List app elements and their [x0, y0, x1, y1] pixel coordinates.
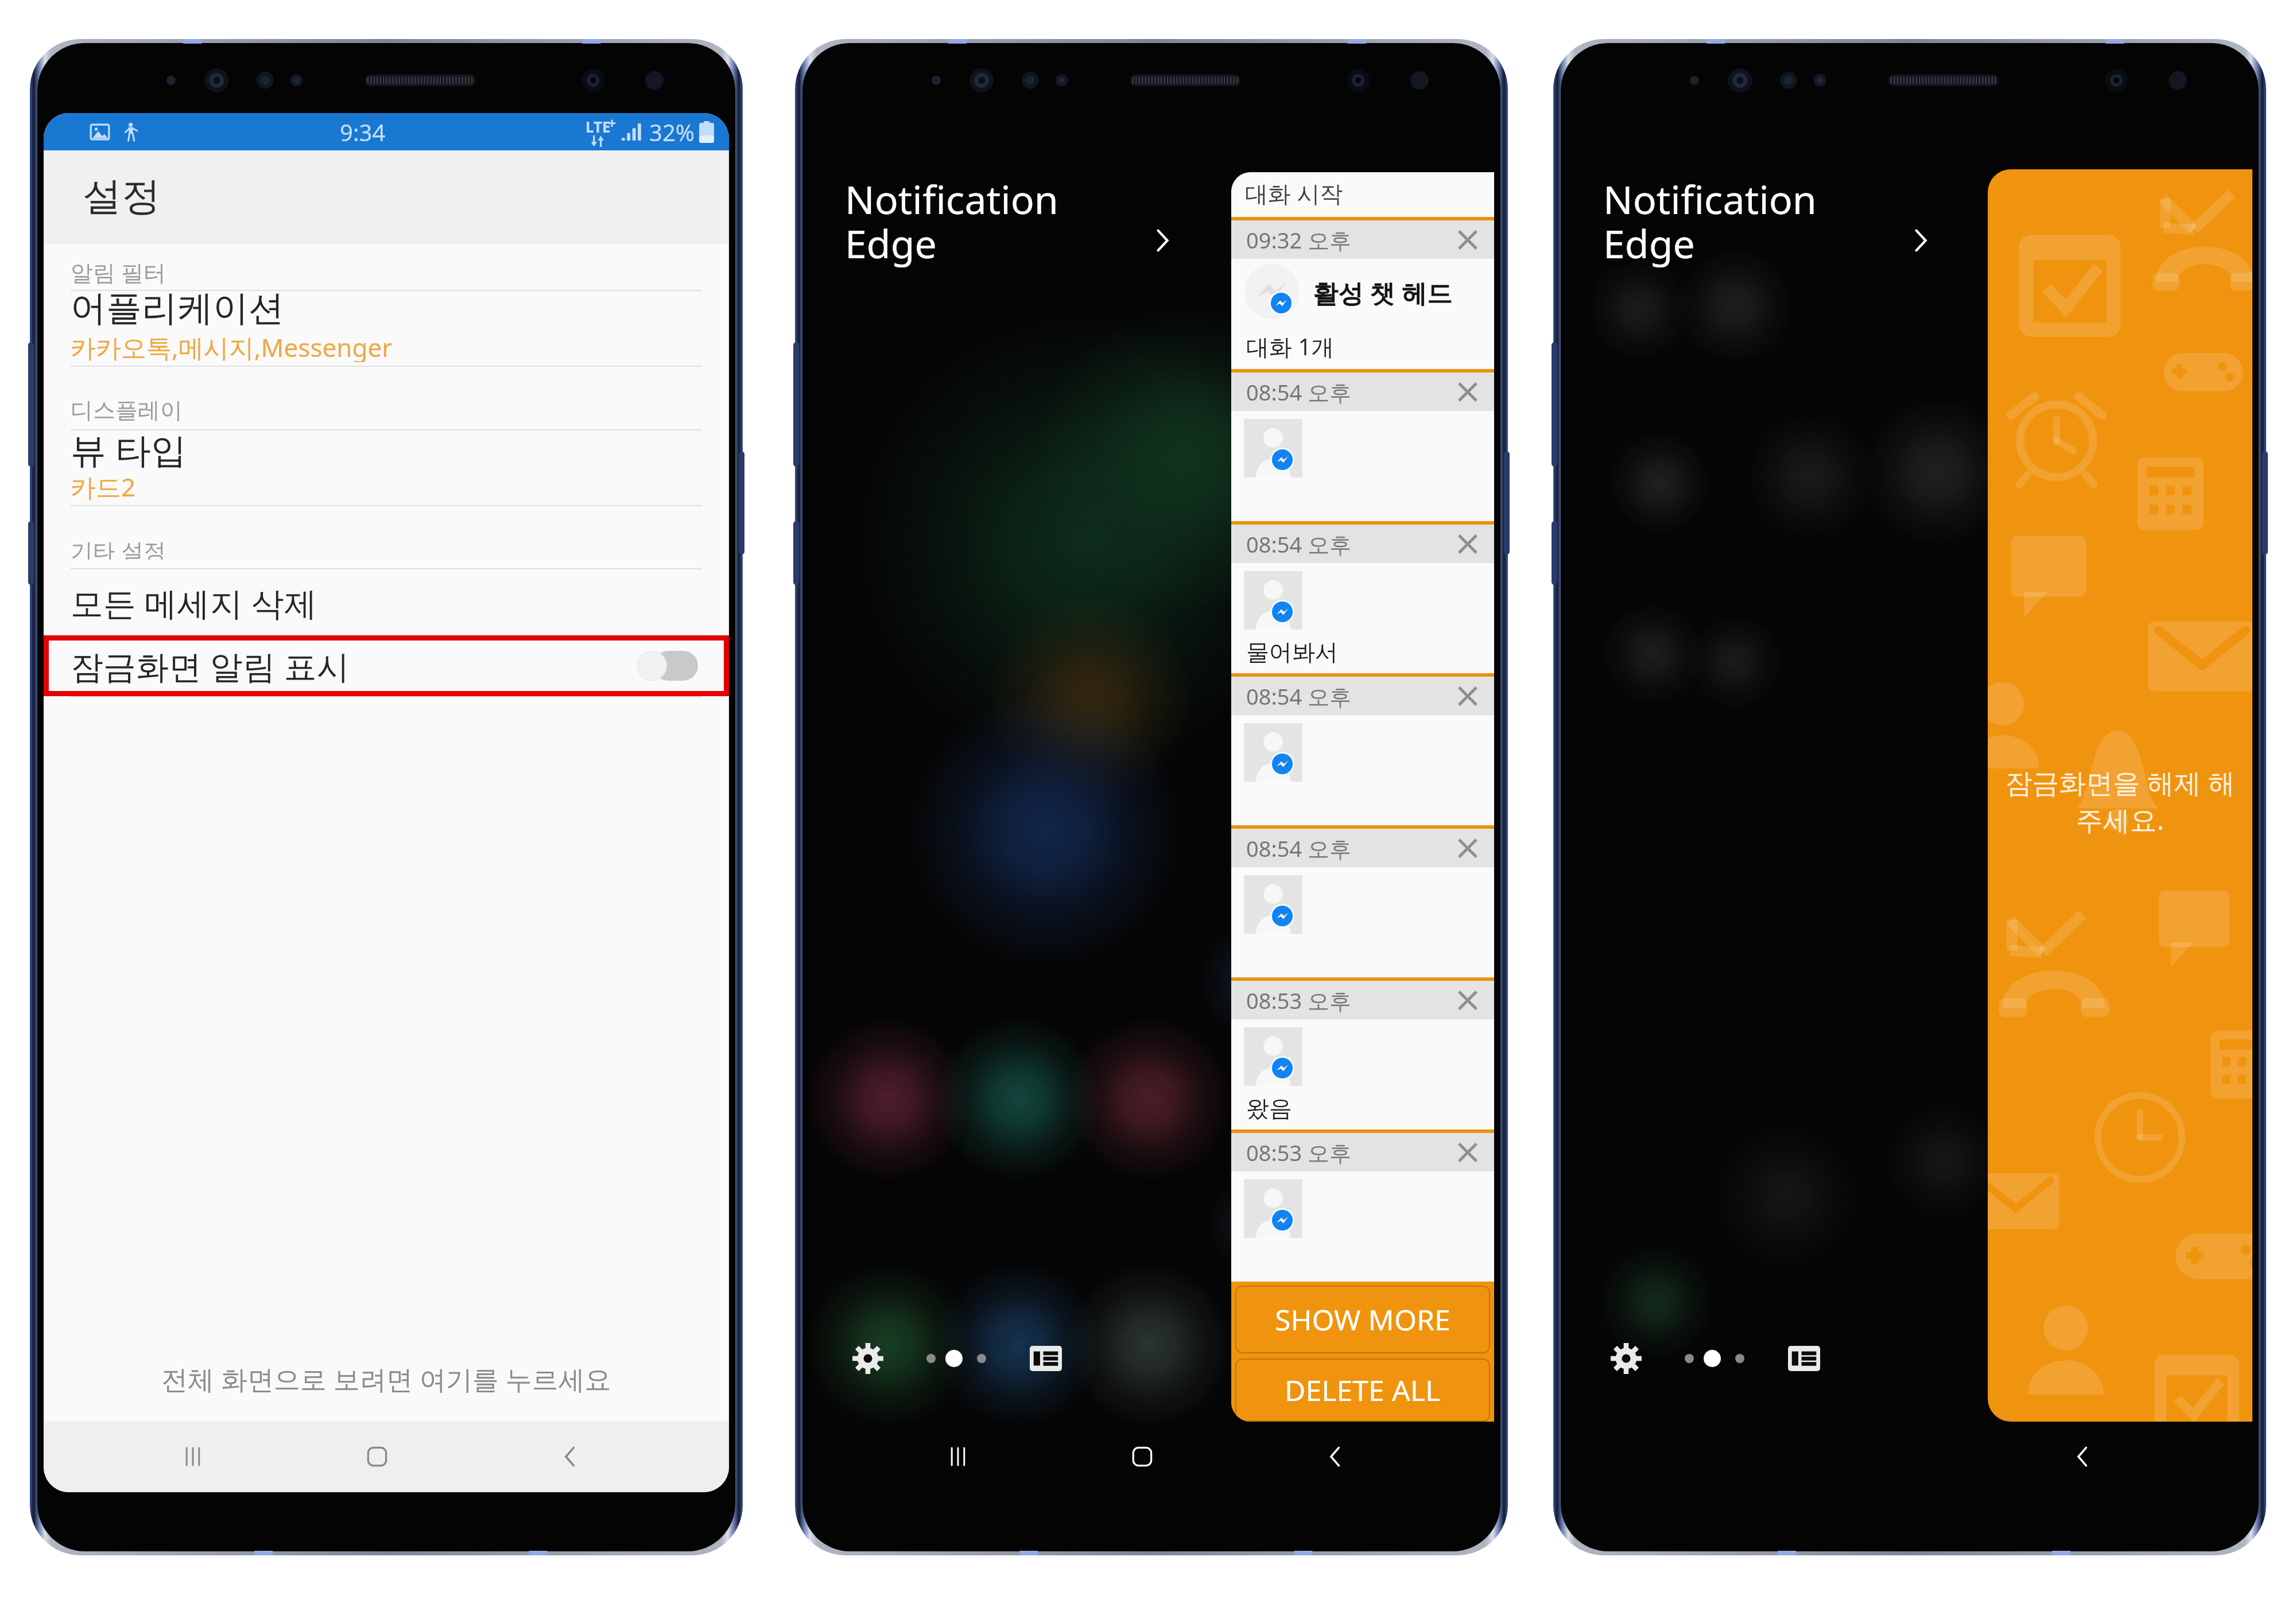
button[interactable]: Home: [1045, 1421, 1239, 1492]
button[interactable]: Open Notification Edge: [1898, 218, 1944, 263]
staticText: 설정: [83, 172, 161, 222]
staticText: 물어봐서: [1246, 638, 1338, 666]
button[interactable]: 뷰 타입: [44, 430, 729, 506]
staticText: 전체 화면으로 보려면 여기를 누르세요: [161, 1361, 611, 1397]
staticText: Notification Edge: [845, 172, 1058, 270]
staticText: 모든 메세지 삭제: [71, 580, 317, 625]
button[interactable]: Dismiss: [1453, 377, 1483, 407]
staticText: 대화 1개: [1246, 331, 1335, 362]
button[interactable]: SHOW MORE: [1235, 1286, 1490, 1353]
button[interactable]: 모든 메세지 삭제: [44, 569, 729, 635]
staticText: 9:34: [340, 117, 386, 147]
button[interactable]: Dismiss: [1453, 529, 1483, 559]
button[interactable]: App list: [1026, 1338, 1066, 1379]
staticText: 08:54 오후: [1246, 377, 1352, 407]
staticText: 32%: [649, 117, 695, 147]
staticText: 잠금화면 알림 표시: [71, 643, 350, 688]
button[interactable]: Dismiss: [1453, 225, 1483, 255]
staticText: 잠금화면을 해제 해 주세요.: [2005, 764, 2235, 838]
button[interactable]: 08:54 오후: [1231, 369, 1494, 521]
staticText: 08:54 오후: [1246, 681, 1352, 711]
staticText: Notification Edge: [1603, 172, 1817, 270]
button[interactable]: Back: [1239, 1421, 1432, 1492]
staticText: 어플리케이션: [71, 286, 284, 328]
staticText: 카카오톡,메시지,Messenger: [71, 330, 393, 362]
button[interactable]: DELETE ALL: [1235, 1358, 1490, 1422]
button[interactable]: Dismiss: [1453, 985, 1483, 1015]
staticText: SHOW MORE: [1275, 1300, 1450, 1339]
button[interactable]: 잠금화면 알림 표시: [44, 635, 729, 696]
button[interactable]: 어플리케이션: [44, 291, 729, 367]
staticText: DELETE ALL: [1285, 1371, 1441, 1410]
button[interactable]: 08:54 오후: [1231, 673, 1494, 825]
staticText: +: [608, 113, 616, 133]
button[interactable]: 09:32 오후: [1231, 217, 1494, 369]
staticText: 디스플레이: [71, 396, 183, 423]
staticText: 08:54 오후: [1246, 529, 1352, 559]
staticText: 08:53 오후: [1246, 1138, 1352, 1167]
button[interactable]: 08:53 오후: [1231, 977, 1494, 1129]
button[interactable]: Back: [474, 1421, 667, 1492]
button[interactable]: Recent apps: [871, 1421, 1045, 1492]
button[interactable]: App list: [1784, 1338, 1824, 1379]
button[interactable]: 08:54 오후: [1231, 521, 1494, 673]
staticText: 활성 챗 헤드: [1313, 275, 1452, 310]
button[interactable]: Recent apps: [106, 1421, 280, 1492]
staticText: 대화 시작: [1245, 177, 1343, 209]
staticText: 카드2: [71, 469, 136, 502]
staticText: 기타 설정: [71, 535, 166, 560]
staticText: 알림 필터: [71, 257, 166, 287]
button[interactable]: Dismiss: [1453, 681, 1483, 711]
button[interactable]: Dismiss: [1453, 1138, 1483, 1167]
button[interactable]: Settings: [848, 1338, 888, 1379]
button[interactable]: 08:54 오후: [1231, 825, 1494, 977]
button[interactable]: 전체 화면으로 보려면 여기를 누르세요: [44, 1336, 729, 1421]
button[interactable]: Open Notification Edge: [1139, 218, 1185, 263]
staticText: LTE: [585, 117, 611, 137]
button[interactable]: Show notifications on lock screen: [637, 651, 698, 681]
staticText: 뷰 타입: [71, 425, 187, 468]
button[interactable]: Home: [280, 1421, 474, 1492]
button[interactable]: 08:53 오후: [1231, 1129, 1494, 1282]
staticText: 08:53 오후: [1246, 985, 1352, 1015]
staticText: 08:54 오후: [1246, 833, 1352, 863]
button[interactable]: Back: [1980, 1421, 2186, 1492]
button[interactable]: Dismiss: [1453, 833, 1483, 863]
staticText: 왔음: [1246, 1094, 1292, 1123]
staticText: 09:32 오후: [1246, 225, 1352, 255]
button[interactable]: Settings: [1606, 1338, 1646, 1379]
